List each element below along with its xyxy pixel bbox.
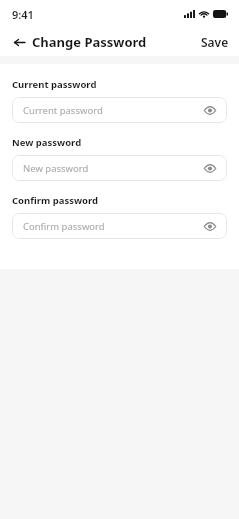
staticText: 9:41: [12, 7, 34, 22]
button[interactable]: Current password: [12, 97, 227, 123]
staticText: Current password: [12, 78, 97, 91]
staticText: New password: [12, 136, 82, 149]
staticText: Current password: [23, 104, 202, 117]
staticText: Save: [201, 34, 229, 50]
button[interactable]: Show password: [202, 102, 218, 118]
button[interactable]: Confirm password: [12, 213, 227, 239]
button[interactable]: Show password: [202, 160, 218, 176]
button[interactable]: Back: [8, 31, 30, 53]
staticText: New password: [23, 162, 202, 175]
button[interactable]: Save: [191, 30, 239, 54]
button[interactable]: New password: [12, 155, 227, 181]
staticText: Change Password: [32, 33, 147, 51]
button[interactable]: Show password: [202, 218, 218, 234]
staticText: Confirm password: [23, 220, 202, 233]
staticText: Confirm password: [12, 194, 99, 207]
